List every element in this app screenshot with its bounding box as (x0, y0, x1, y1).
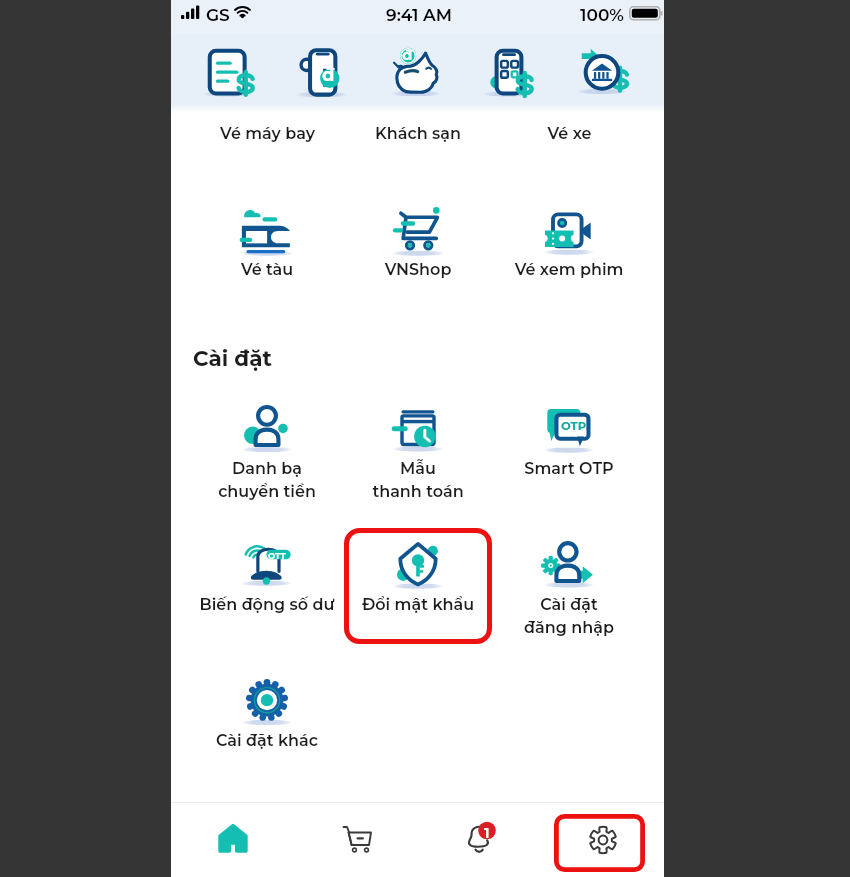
staticText: GS (206, 5, 230, 26)
staticText: Đổi mật khẩu (343, 595, 493, 615)
button[interactable]: Vé tàu (192, 197, 342, 308)
button[interactable]: Settings (541, 802, 664, 877)
staticText: 9:41 AM (386, 5, 453, 26)
staticText: Danh bạ chuyển tiền (192, 459, 342, 501)
button[interactable]: Khách sạn (343, 124, 493, 144)
button[interactable]: Mẫu thanh toán (343, 395, 493, 507)
staticText: Khách sạn (375, 124, 461, 144)
button[interactable]: Cài đặt khác (192, 669, 342, 779)
button[interactable]: Shopping cart (295, 802, 418, 877)
staticText: OTT (268, 551, 286, 561)
button[interactable]: OTP (494, 395, 644, 507)
staticText: đ (322, 64, 335, 86)
button[interactable]: Đổi mật khẩu (343, 531, 493, 643)
button[interactable]: Vé xe (494, 124, 644, 144)
staticText: Cài đặt khác (192, 731, 342, 751)
staticText: Mẫu thanh toán (343, 459, 493, 501)
staticText: Vé tàu (192, 260, 342, 280)
staticText: Vé xe (547, 124, 592, 144)
staticText: Vé máy bay (220, 124, 315, 144)
button[interactable]: Home (171, 802, 295, 877)
button[interactable]: Cài đặt đăng nhập (494, 531, 644, 643)
button[interactable]: Danh bạ chuyển tiền (192, 395, 342, 507)
staticText: Cài đặt (193, 345, 272, 371)
staticText: đ (402, 45, 413, 63)
button[interactable]: Vé xem phim (494, 197, 644, 308)
button[interactable]: OTT (192, 531, 342, 643)
staticText: Cài đặt đăng nhập (494, 595, 644, 637)
staticText: OTP (561, 419, 587, 433)
button[interactable]: Vé máy bay (192, 124, 342, 144)
staticText: 100% (580, 5, 624, 26)
staticText: 1 (484, 824, 490, 841)
button[interactable]: Notifications (418, 802, 541, 877)
staticText: Smart OTP (494, 459, 644, 479)
button[interactable]: VNShop (343, 197, 493, 308)
staticText: VNShop (343, 260, 493, 280)
staticText: Biến động số dư (192, 595, 342, 615)
staticText: Vé xem phim (494, 260, 644, 280)
